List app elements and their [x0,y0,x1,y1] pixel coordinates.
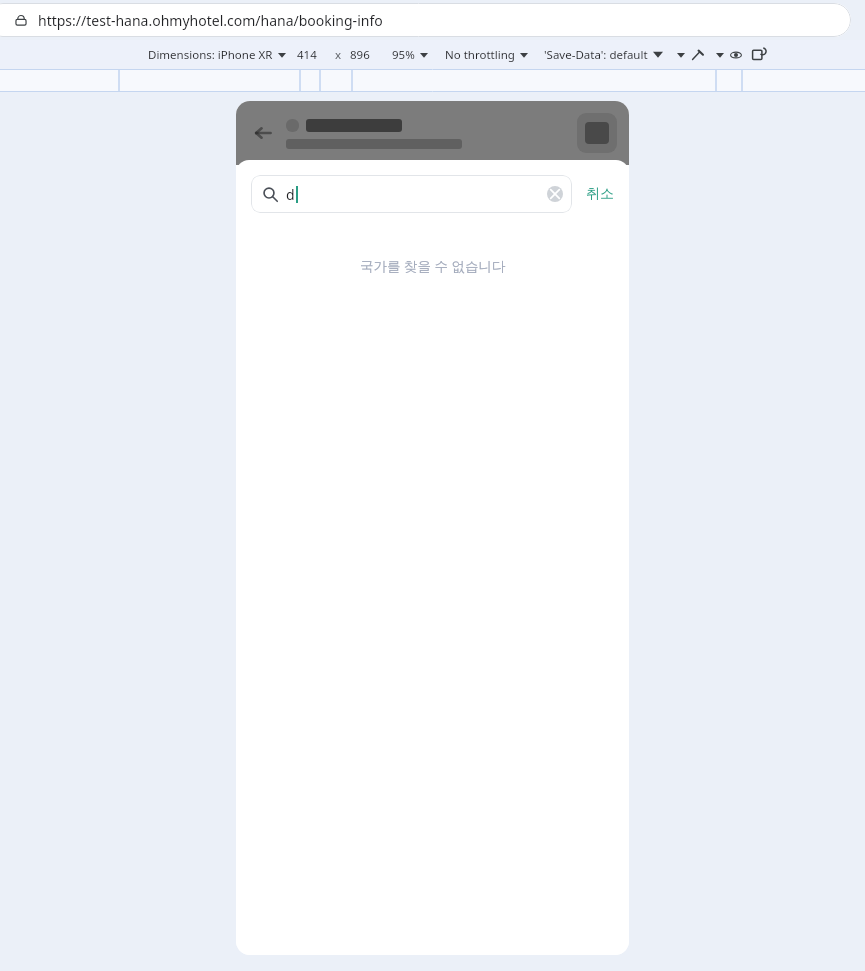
other: Secure connection [14,13,28,27]
button[interactable]: Capture screenshot [752,47,767,62]
button[interactable]: Open menu [520,52,528,58]
staticText: No throttling [445,47,515,63]
button[interactable]: 취소 [584,179,616,209]
button[interactable]: Secure connection [0,3,851,37]
other: Search [263,187,278,202]
staticText: Dimensions: iPhone XR [148,47,273,63]
staticText: 414 [297,47,317,63]
staticText: 95% [392,47,415,63]
button[interactable]: Open menu [716,52,724,58]
button[interactable]: Toggle visibility [730,49,742,61]
staticText: 국가를 찾을 수 없습니다 [360,257,506,275]
staticText: x [335,47,342,63]
button[interactable]: Open menu [677,52,685,58]
button[interactable]: Search [263,175,563,213]
staticText: 896 [350,47,370,63]
button[interactable]: Clear search [547,186,563,202]
button[interactable]: Open menu [278,52,286,58]
staticText: 'Save-Data': default [544,47,648,63]
button[interactable]: Back [248,118,278,148]
staticText: https://test-hana.ohmyhotel.com/hana/boo… [38,11,383,30]
button[interactable]: Pick color [691,48,704,61]
button[interactable]: Booking details [577,113,617,153]
button[interactable]: Open menu [653,51,663,58]
staticText: d [286,185,295,204]
staticText: 취소 [586,185,614,203]
button[interactable]: Open menu [420,52,428,58]
